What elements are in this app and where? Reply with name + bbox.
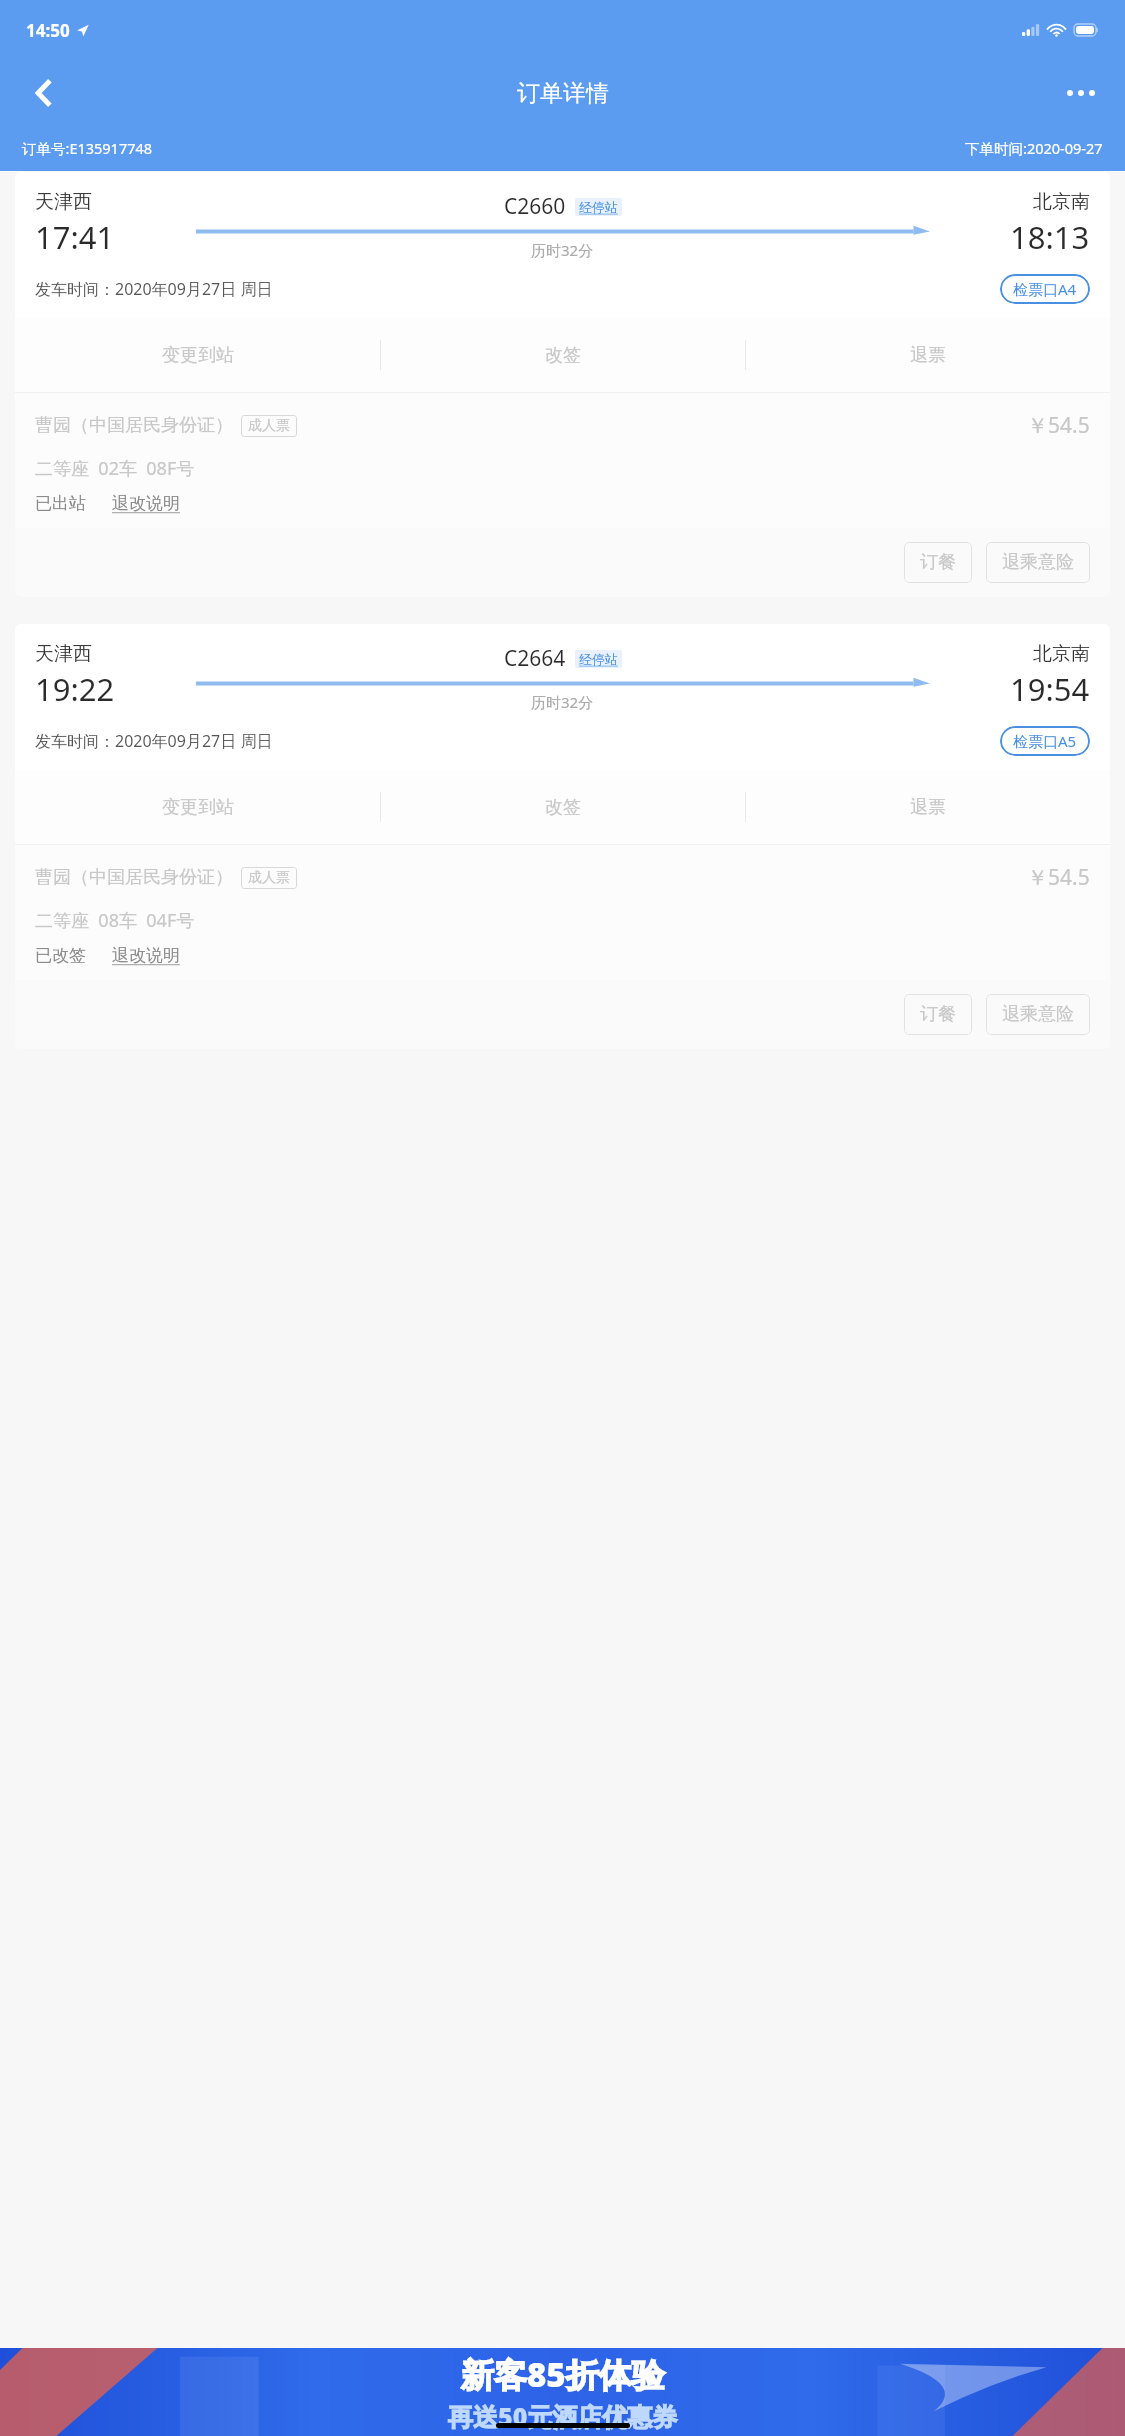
staticText: 检票口A4 [1013, 279, 1077, 299]
staticText: 成人票 [248, 869, 290, 887]
staticText: 退票 [910, 796, 946, 819]
staticText: 退票 [910, 344, 946, 367]
staticText: 再送50元酒店优惠券 [448, 2399, 678, 2433]
staticText: 14:50 [26, 19, 70, 42]
staticText: 改签 [545, 344, 581, 367]
staticText: 经停站 [579, 199, 618, 215]
staticText: 曹园（中国居民身份证） [35, 414, 233, 437]
button[interactable]: 变更到站 [15, 318, 380, 392]
staticText: 下单时间:2020-09-27 [965, 138, 1103, 158]
staticText: 历时32分 [531, 692, 594, 712]
staticText: 变更到站 [162, 796, 234, 819]
staticText: 曹园（中国居民身份证） [35, 866, 233, 889]
staticText: 已改签 [35, 945, 86, 966]
staticText: C2664 [504, 644, 566, 673]
staticText: 17:41 [35, 216, 115, 258]
staticText: 19:22 [35, 668, 115, 710]
button[interactable]: 退乘意险 [986, 542, 1090, 583]
staticText: 订餐 [920, 551, 956, 574]
button[interactable]: 退乘意险 [986, 994, 1090, 1035]
button[interactable]: 变更到站 [15, 770, 380, 844]
staticText: 天津西 [35, 642, 92, 666]
button[interactable]: 退票 [746, 770, 1110, 844]
button[interactable]: 退票 [746, 318, 1110, 392]
staticText: 成人票 [248, 417, 290, 435]
staticText: 二等座 08车 04F号 [35, 908, 195, 933]
button[interactable]: 天津西 [15, 624, 1110, 770]
staticText: 经停站 [579, 651, 618, 667]
staticText: 北京南 [1033, 190, 1090, 214]
staticText: 发车时间：2020年09月27日 周日 [35, 278, 273, 300]
button[interactable]: 天津西 [15, 172, 1110, 318]
button[interactable]: 经停站 [575, 650, 622, 668]
button[interactable]: More options [1053, 65, 1109, 121]
staticText: 检票口A5 [1013, 731, 1077, 751]
button[interactable]: 订餐 [904, 542, 972, 583]
staticText: C2660 [504, 192, 566, 221]
button[interactable]: 曹园（中国居民身份证） [15, 393, 1110, 528]
staticText: 18:13 [1010, 216, 1090, 258]
staticText: 订单详情 [517, 79, 609, 108]
staticText: 变更到站 [162, 344, 234, 367]
staticText: 天津西 [35, 190, 92, 214]
staticText: 发车时间：2020年09月27日 周日 [35, 730, 273, 752]
staticText: 北京南 [1033, 642, 1090, 666]
staticText: 历时32分 [531, 240, 594, 260]
button[interactable]: 检票口A4 [1000, 274, 1090, 304]
button[interactable]: 退改说明 [112, 945, 180, 966]
button[interactable]: 经停站 [575, 198, 622, 216]
button[interactable]: 退改说明 [112, 493, 180, 514]
button[interactable]: 改签 [381, 318, 745, 392]
staticText: 二等座 02车 08F号 [35, 456, 195, 481]
staticText: 改签 [545, 796, 581, 819]
staticText: 订餐 [920, 1003, 956, 1026]
button[interactable]: 曹园（中国居民身份证） [15, 845, 1110, 980]
staticText: 已出站 [35, 493, 86, 514]
button[interactable]: 订餐 [904, 994, 972, 1035]
staticText: ￥54.5 [1027, 863, 1090, 892]
staticText: 退乘意险 [1002, 1003, 1074, 1026]
button[interactable]: 检票口A5 [1000, 726, 1090, 756]
button[interactable]: 改签 [381, 770, 745, 844]
staticText: 新客85折体验 [461, 2352, 665, 2397]
staticText: ￥54.5 [1027, 411, 1090, 440]
staticText: 19:54 [1010, 668, 1090, 710]
staticText: 退改说明 [112, 493, 180, 514]
button[interactable]: Back [16, 65, 72, 121]
button[interactable]: Promotion banner [0, 2348, 1125, 2436]
staticText: 退乘意险 [1002, 551, 1074, 574]
staticText: 退改说明 [112, 945, 180, 966]
staticText: 订单号:E135917748 [22, 138, 153, 158]
